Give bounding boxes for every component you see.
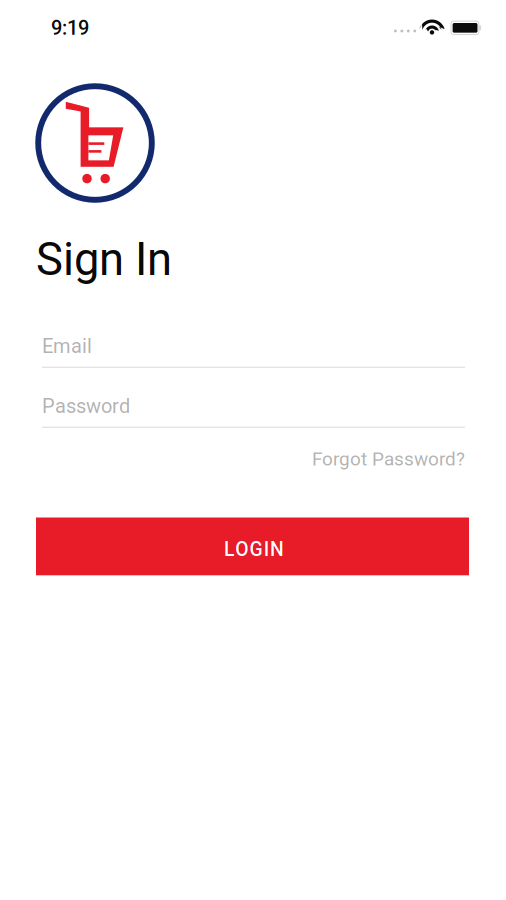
button[interactable]: Password [42,385,465,429]
button[interactable]: Forgot Password? [312,446,465,472]
staticText: Email [42,334,92,358]
button[interactable]: LOGIN [36,517,469,575]
staticText: LOGIN [224,538,284,561]
staticText: Sign In [36,233,172,286]
button[interactable]: Email [42,325,465,369]
staticText: Forgot Password? [312,448,465,470]
staticText: 9:19 [51,16,89,40]
staticText: Password [42,394,130,418]
